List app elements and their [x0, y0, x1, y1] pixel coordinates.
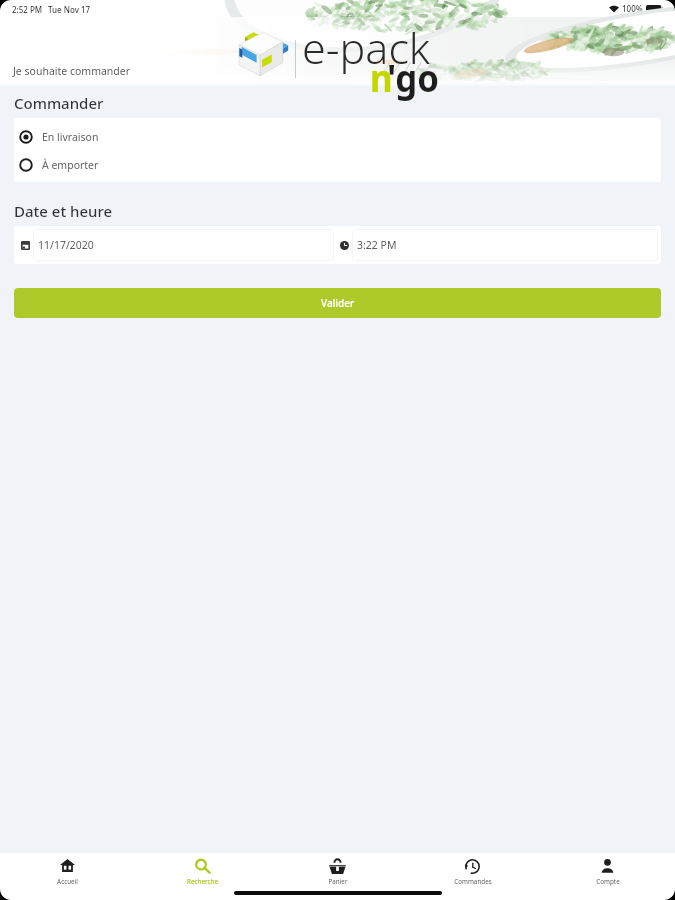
button[interactable]: Accueil [0, 859, 135, 892]
staticText: 11/17/2020 [38, 238, 94, 252]
staticText: Valider [321, 296, 355, 310]
staticText: n [370, 52, 393, 102]
button[interactable]: Compte [540, 859, 675, 892]
staticText: Accueil [57, 877, 78, 886]
staticText: e-pack [302, 18, 431, 77]
staticText: Compte [596, 877, 620, 886]
button[interactable]: Commandes [405, 859, 540, 892]
staticText: 100% [622, 3, 643, 14]
button[interactable]: Valider [14, 288, 661, 318]
staticText: Commander [14, 93, 104, 113]
staticText: 2:52 PM [12, 4, 43, 15]
other: Choisir la date [21, 241, 30, 250]
staticText: Recherche [187, 877, 218, 886]
button[interactable]: En livraison [14, 124, 661, 149]
staticText: Date et heure [14, 201, 113, 221]
button[interactable]: À emporter [14, 152, 661, 177]
staticText: Commandes [454, 877, 492, 886]
other: Choisir l'heure [340, 241, 349, 250]
button[interactable]: Choisir l'heure [337, 226, 661, 264]
staticText: Panier [328, 877, 348, 886]
button[interactable]: Choisir la date [14, 226, 337, 264]
staticText: Je souhaite commander [13, 64, 131, 78]
button[interactable]: Recherche [135, 859, 270, 892]
staticText: Tue Nov 17 [48, 4, 91, 15]
staticText: 3:22 PM [357, 238, 397, 252]
staticText: À emporter [42, 158, 99, 172]
button[interactable]: Panier [270, 859, 405, 892]
staticText: 'go [387, 52, 440, 102]
staticText: En livraison [42, 130, 99, 144]
